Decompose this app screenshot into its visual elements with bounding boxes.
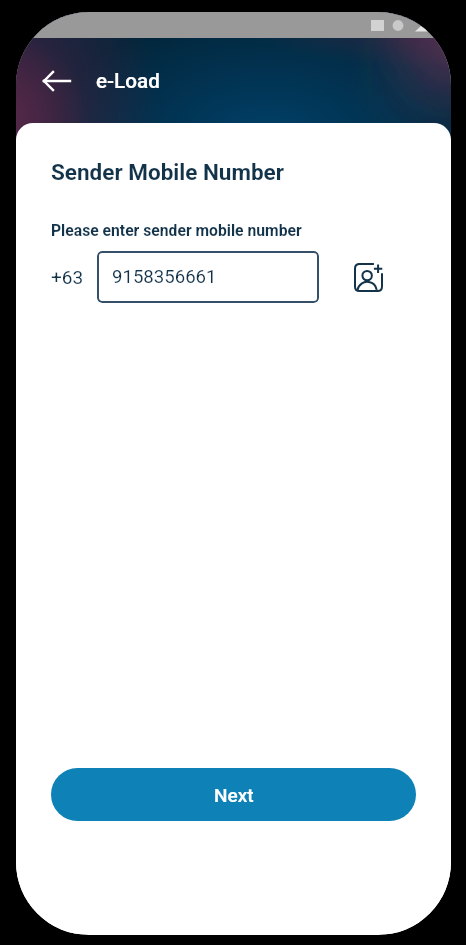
staticText: Next — [214, 784, 254, 806]
button[interactable]: Add contact — [350, 259, 386, 295]
staticText: +63 — [51, 266, 84, 288]
staticText: 9158356661 — [112, 266, 217, 288]
staticText: Please enter sender mobile number — [51, 221, 302, 239]
staticText: e-Load — [96, 69, 160, 93]
button[interactable]: 9158356661 — [97, 251, 319, 303]
button[interactable]: Back — [36, 60, 78, 102]
button[interactable]: Next — [51, 768, 416, 821]
staticText: Sender Mobile Number — [51, 159, 284, 185]
